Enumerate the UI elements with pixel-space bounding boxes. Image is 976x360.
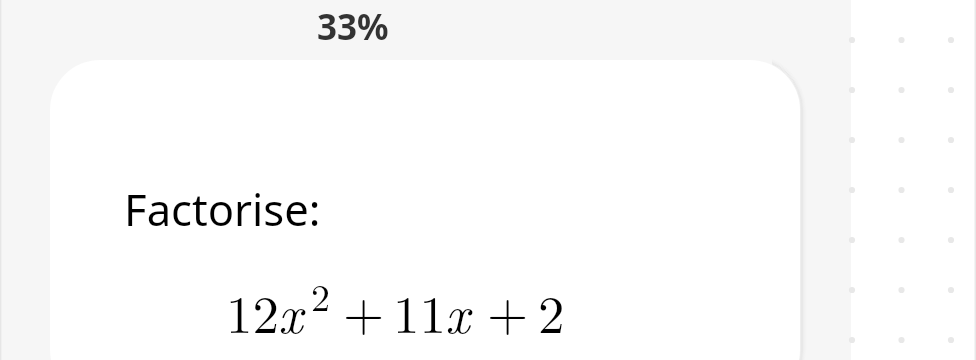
staticText: 2 [311,268,331,322]
staticText: 12 [226,273,279,348]
staticText: + [487,271,529,346]
staticText: x [278,273,303,348]
staticText: Factorise: [124,179,321,238]
staticText: 33% [317,3,389,51]
staticText: x [445,273,470,348]
button[interactable]: Next question [851,0,976,360]
staticText: 2 [538,273,565,348]
button[interactable]: Factorise: [50,60,800,360]
staticText: 11 [393,273,446,348]
staticText: + [343,271,385,346]
